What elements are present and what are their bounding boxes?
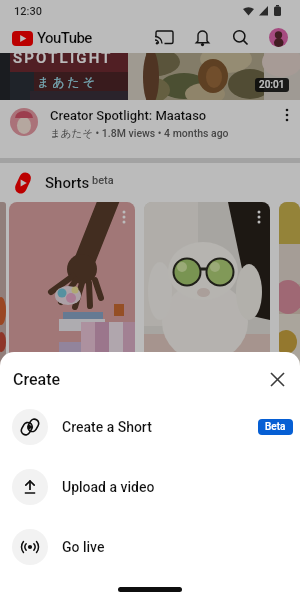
staticText: Create a Short (62, 419, 152, 435)
staticText: 20:01 (259, 79, 285, 91)
staticText: 12:30 (14, 5, 42, 18)
staticText: Creator Spotlight: Maataso (50, 108, 207, 123)
button[interactable] (279, 202, 300, 372)
button[interactable]: Upload a video (0, 457, 300, 517)
button[interactable]: SPOTLIGHT (0, 53, 300, 100)
staticText: Upload a video (62, 479, 155, 495)
button[interactable]: Creator Spotlight: Maataso (10, 108, 300, 148)
button[interactable] (231, 28, 250, 47)
staticText: Create (13, 370, 61, 389)
staticText: Go live (62, 539, 105, 555)
button[interactable] (269, 28, 288, 47)
staticText: YouTube (37, 29, 92, 47)
staticText: Shorts (45, 174, 90, 192)
button[interactable] (267, 369, 287, 389)
button[interactable]: Create a Short (0, 397, 300, 457)
button[interactable] (155, 28, 174, 47)
staticText: まあたそ (37, 74, 99, 89)
staticText: まあたそ • 1.8M views • 4 months ago (50, 127, 229, 140)
button[interactable]: YouTube (12, 29, 92, 47)
button[interactable] (193, 28, 212, 47)
button[interactable] (9, 202, 135, 372)
button[interactable]: Go live (0, 517, 300, 577)
staticText: beta (92, 174, 114, 187)
staticText: SPOTLIGHT (13, 53, 113, 67)
staticText: Beta (265, 421, 286, 433)
button[interactable] (144, 202, 270, 372)
